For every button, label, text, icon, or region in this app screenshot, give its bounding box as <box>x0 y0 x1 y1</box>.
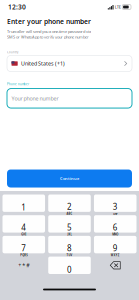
button[interactable]: United States (+1) <box>7 55 132 71</box>
staticText: DEF <box>113 212 117 215</box>
button[interactable]: 7 <box>2 236 45 253</box>
button[interactable]: Continue <box>7 169 132 187</box>
staticText: PQRS <box>20 253 27 257</box>
button[interactable]: 4 <box>2 215 45 233</box>
staticText: MNO <box>112 233 118 236</box>
staticText: Your phone number <box>11 95 58 102</box>
button[interactable]: 2 <box>48 194 91 212</box>
staticText: 7 <box>21 243 26 253</box>
staticText: 6 <box>113 222 118 233</box>
staticText: + * # <box>18 262 29 269</box>
staticText: 9 <box>113 243 118 253</box>
staticText: 5 <box>67 222 72 233</box>
button[interactable]: Delete <box>94 257 136 274</box>
staticText: 12:30 <box>8 3 26 11</box>
staticText: 0 <box>67 264 72 275</box>
staticText: WXYZ <box>111 253 120 257</box>
staticText: Truecaller will send you a one-time pass… <box>7 29 91 39</box>
staticText: LTE <box>115 4 121 10</box>
button[interactable]: 6 <box>94 215 136 233</box>
staticText: Country <box>7 50 18 54</box>
button[interactable]: Your phone number <box>7 89 132 108</box>
staticText: 1 <box>21 202 26 213</box>
button[interactable]: Symbols <box>2 257 45 274</box>
staticText: 4 <box>21 222 26 233</box>
staticText: TUV <box>66 253 72 257</box>
staticText: Enter your phone number <box>7 17 91 26</box>
staticText: Phone number <box>7 82 29 86</box>
staticText: United States (+1) <box>21 60 65 67</box>
button[interactable]: 0 <box>48 257 91 274</box>
staticText: 3 <box>113 201 118 212</box>
button[interactable]: 5 <box>48 215 91 233</box>
staticText: 8 <box>67 243 72 253</box>
button[interactable]: 1 <box>2 194 45 212</box>
staticText: Continue <box>60 176 79 181</box>
staticText: ABC <box>66 212 72 215</box>
button[interactable]: 9 <box>94 236 136 253</box>
button[interactable]: 8 <box>48 236 91 253</box>
staticText: GHI <box>21 233 26 236</box>
staticText: JKL <box>67 233 71 236</box>
button[interactable]: 3 <box>94 194 136 212</box>
staticText: 2 <box>67 201 72 212</box>
